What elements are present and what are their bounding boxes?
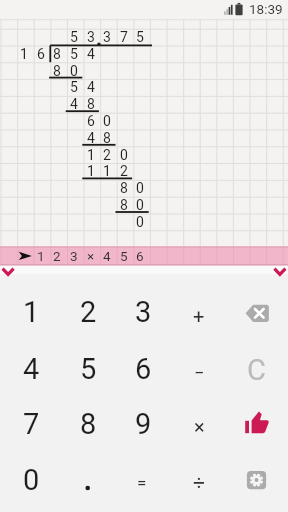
staticText: 8: [103, 130, 111, 146]
staticText: 1: [20, 46, 28, 62]
staticText: 4: [70, 96, 78, 112]
staticText: −: [194, 362, 205, 383]
staticText: 5: [70, 46, 78, 62]
staticText: 5: [70, 79, 78, 95]
staticText: 4: [103, 248, 111, 264]
button[interactable]: [61, 397, 115, 451]
staticText: 6: [37, 46, 45, 62]
button[interactable]: [172, 397, 226, 451]
staticText: 0: [120, 147, 128, 163]
staticText: 9: [135, 407, 152, 441]
staticText: 5: [70, 29, 78, 45]
staticText: 4: [23, 352, 40, 386]
staticText: 7: [23, 407, 40, 441]
button[interactable]: [268, 263, 288, 281]
staticText: 2: [53, 248, 61, 264]
staticText: 2: [120, 163, 128, 179]
staticText: +: [193, 304, 205, 327]
staticText: 0: [70, 63, 78, 79]
button[interactable]: [61, 285, 115, 339]
staticText: 8: [80, 407, 97, 441]
button[interactable]: [4, 397, 58, 451]
button[interactable]: [172, 285, 226, 339]
button[interactable]: [116, 453, 170, 507]
staticText: 8: [53, 46, 61, 62]
button[interactable]: [4, 342, 58, 396]
staticText: 5: [136, 29, 144, 45]
staticText: ×: [87, 248, 95, 264]
button[interactable]: [230, 342, 284, 396]
staticText: 7: [120, 29, 128, 45]
button[interactable]: [230, 285, 284, 339]
staticText: 8: [120, 180, 128, 196]
staticText: 0: [136, 180, 144, 196]
staticText: 1: [87, 163, 95, 179]
staticText: ×: [194, 415, 205, 438]
button[interactable]: [0, 263, 20, 281]
staticText: 6: [135, 352, 152, 386]
staticText: 6: [87, 113, 95, 129]
button[interactable]: [61, 453, 115, 507]
staticText: 2: [80, 295, 97, 329]
button[interactable]: [230, 397, 284, 451]
staticText: 0: [136, 197, 144, 213]
staticText: 1: [37, 248, 45, 264]
staticText: 0: [103, 113, 111, 129]
staticText: 0: [136, 214, 144, 230]
staticText: 18:39: [249, 1, 283, 17]
staticText: 2: [103, 147, 111, 163]
staticText: 4: [87, 79, 95, 95]
staticText: 3: [87, 29, 95, 45]
staticText: 8: [53, 63, 61, 79]
staticText: 5: [80, 352, 97, 386]
staticText: 4: [87, 130, 95, 146]
button[interactable]: [0, 246, 288, 265]
staticText: 8: [120, 197, 128, 213]
staticText: C: [247, 353, 266, 387]
staticText: 3: [70, 248, 78, 264]
button[interactable]: [172, 453, 226, 507]
staticText: 8: [87, 96, 95, 112]
button[interactable]: [116, 285, 170, 339]
staticText: 4: [87, 46, 95, 62]
staticText: 3: [135, 295, 152, 329]
button[interactable]: [61, 342, 115, 396]
button[interactable]: [230, 453, 284, 507]
staticText: 3: [103, 29, 111, 45]
staticText: 0: [23, 463, 40, 497]
staticText: 5: [120, 248, 128, 264]
staticText: =: [137, 473, 147, 493]
button[interactable]: [172, 342, 226, 396]
staticText: 6: [136, 248, 144, 264]
button[interactable]: [4, 285, 58, 339]
staticText: 1: [103, 163, 111, 179]
staticText: 1: [87, 147, 95, 163]
staticText: 1: [23, 295, 40, 329]
button[interactable]: [116, 342, 170, 396]
button[interactable]: [4, 453, 58, 507]
staticText: ÷: [193, 471, 205, 496]
button[interactable]: [116, 397, 170, 451]
